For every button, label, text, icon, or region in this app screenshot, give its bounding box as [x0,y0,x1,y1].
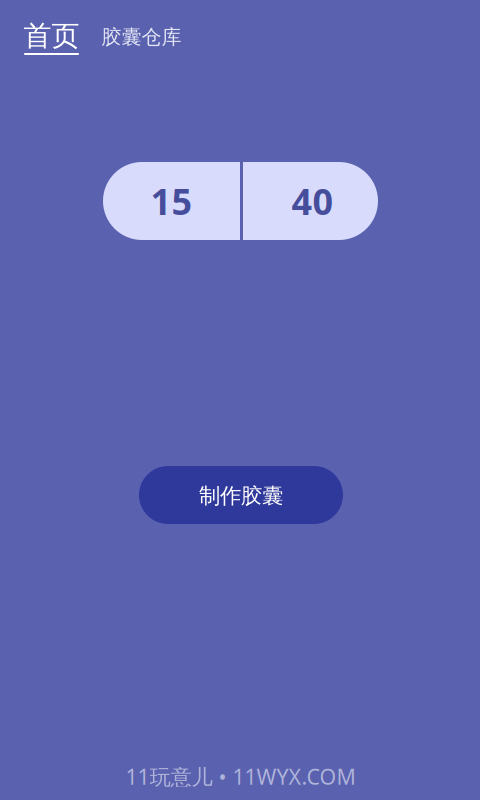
staticText: 制作胶囊 [199,483,283,509]
button[interactable]: 首页 [20,21,82,67]
staticText: 40 [291,177,333,225]
staticText: 11玩意儿 • 11WYX.COM [125,762,355,791]
button[interactable]: 胶囊仓库 [95,17,187,57]
button[interactable]: 制作胶囊 [139,466,343,524]
staticText: 15 [150,177,192,225]
staticText: 首页 [23,19,79,53]
staticText: 胶囊仓库 [101,25,181,49]
